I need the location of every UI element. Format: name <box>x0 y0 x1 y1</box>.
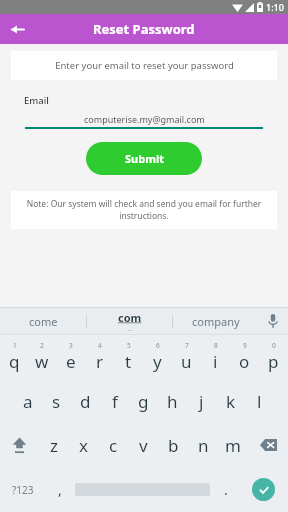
staticText: b <box>168 434 179 457</box>
staticText: 9 <box>243 341 247 350</box>
button[interactable]: Space <box>73 467 212 512</box>
button[interactable]: 5 <box>114 335 143 379</box>
staticText: 6 <box>156 341 160 350</box>
staticText: g <box>138 390 149 413</box>
button[interactable]: m <box>218 423 248 467</box>
button[interactable]: 7 <box>172 335 201 379</box>
button[interactable]: g <box>129 379 158 423</box>
button[interactable]: 0 <box>259 335 288 379</box>
button[interactable]: Backspace <box>248 423 288 467</box>
staticText: computerise.my@gmail.com <box>84 113 205 125</box>
button[interactable]: 1 <box>0 335 28 379</box>
button[interactable]: ?123 <box>0 467 46 512</box>
button[interactable]: b <box>158 423 188 467</box>
staticText: y <box>153 350 162 373</box>
button[interactable]: Submit <box>86 142 202 175</box>
button[interactable]: com <box>87 308 172 334</box>
staticText: 1 <box>13 341 17 350</box>
staticText: Reset Password <box>93 20 195 38</box>
staticText: r <box>96 350 104 373</box>
staticText: , <box>58 480 62 499</box>
staticText: p <box>268 350 279 373</box>
button[interactable]: j <box>187 379 216 423</box>
staticText: s <box>52 390 61 413</box>
button[interactable]: company <box>173 308 258 334</box>
button[interactable]: c <box>98 423 128 467</box>
staticText: o <box>239 350 250 373</box>
button[interactable]: v <box>128 423 158 467</box>
button[interactable]: 8 <box>201 335 230 379</box>
staticText: Enter your email to reset your password <box>55 59 234 72</box>
staticText: ?123 <box>12 483 34 497</box>
staticText: q <box>9 350 20 373</box>
button[interactable]: . <box>212 467 239 512</box>
staticText: n <box>198 434 209 457</box>
staticText: come <box>29 314 58 329</box>
staticText: Note: Our system will check and send you… <box>23 198 265 222</box>
staticText: c <box>109 434 118 457</box>
button[interactable]: x <box>68 423 98 467</box>
staticText: 0 <box>272 341 276 350</box>
button[interactable]: z <box>39 423 68 467</box>
staticText: j <box>199 390 204 413</box>
staticText: Submit <box>125 151 164 166</box>
button[interactable]: 6 <box>143 335 172 379</box>
staticText: 3 <box>69 341 73 350</box>
staticText: f <box>112 390 118 413</box>
button[interactable]: 2 <box>28 335 56 379</box>
staticText: 7 <box>185 341 189 350</box>
staticText: h <box>167 390 178 413</box>
button[interactable]: come <box>0 308 86 334</box>
button[interactable]: Shift <box>0 423 39 467</box>
staticText: Email <box>24 94 49 107</box>
staticText: w <box>35 350 49 373</box>
staticText: ... <box>128 325 133 333</box>
staticText: 1:10 <box>266 1 284 13</box>
button[interactable]: a <box>14 379 42 423</box>
staticText: v <box>139 434 148 457</box>
button[interactable]: n <box>188 423 218 467</box>
staticText: d <box>80 390 91 413</box>
button[interactable]: 4 <box>85 335 114 379</box>
button[interactable]: l <box>245 379 274 423</box>
button[interactable]: k <box>216 379 245 423</box>
button[interactable]: s <box>42 379 71 423</box>
button[interactable]: Voice input <box>258 308 288 334</box>
staticText: 2 <box>40 341 44 350</box>
staticText: e <box>66 350 76 373</box>
staticText: x <box>79 434 88 457</box>
staticText: i <box>213 350 218 373</box>
button[interactable]: 9 <box>230 335 259 379</box>
button[interactable]: Back <box>6 18 28 40</box>
staticText: u <box>181 350 192 373</box>
staticText: company <box>192 314 240 329</box>
staticText: t <box>125 350 132 373</box>
button[interactable]: computerise.my@gmail.com <box>25 110 263 127</box>
staticText: l <box>257 390 262 413</box>
staticText: 4 <box>98 341 102 350</box>
staticText: m <box>225 434 241 457</box>
button[interactable]: h <box>158 379 187 423</box>
staticText: . <box>224 480 228 499</box>
staticText: z <box>50 434 58 457</box>
staticText: a <box>23 390 33 413</box>
button[interactable]: f <box>100 379 129 423</box>
button[interactable]: 3 <box>56 335 85 379</box>
button[interactable]: Enter <box>239 467 288 512</box>
staticText: com <box>118 310 142 325</box>
staticText: 8 <box>214 341 218 350</box>
button[interactable]: d <box>71 379 100 423</box>
button[interactable]: , <box>46 467 73 512</box>
staticText: 5 <box>127 341 131 350</box>
staticText: k <box>226 390 236 413</box>
